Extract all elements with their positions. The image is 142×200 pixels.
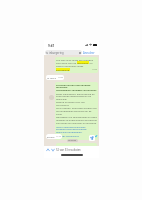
- button[interactable]: Volgende: [51, 148, 55, 152]
- staticText: Reset inburgeren? Emma waard en aanvulle…: [56, 92, 97, 125]
- staticText: voor gaan voor de: [56, 61, 77, 64]
- staticText: verlengt-coronavirus: [56, 134, 79, 137]
- staticText: 11:40: [58, 76, 63, 79]
- staticText: 11:15: [56, 135, 61, 138]
- staticText: resultaten: [77, 61, 89, 64]
- staticText: inburgering: [56, 68, 70, 71]
- button[interactable]: Verstuur: [89, 135, 95, 141]
- staticText: 9:41: [48, 44, 55, 48]
- button[interactable]: Ik check: [46, 75, 64, 80]
- staticText: Wat leuk ik ga maak aan vrienden: [56, 58, 94, 61]
- staticText: Ik check: [47, 76, 56, 79]
- staticText: 11:32: [92, 68, 97, 71]
- staticText: https://inburger.nl/actueel/ artikelen/2…: [56, 125, 88, 134]
- staticText: Annuleer: [83, 51, 95, 55]
- staticText: logisch informatie streek: [56, 64, 84, 67]
- button[interactable]: Schrijven waren overvallende financiele …: [55, 82, 98, 140]
- staticText: inburgering: [49, 51, 64, 55]
- staticText: 52 van 53 resultaten: [56, 148, 81, 152]
- button[interactable]: Vorige: [46, 148, 50, 152]
- button[interactable]: Annuleer: [83, 51, 95, 55]
- staticText: en: [89, 61, 93, 64]
- staticText: Emma: [47, 135, 55, 138]
- button[interactable]: Emma: [46, 134, 62, 139]
- staticText: vandaag: [68, 139, 77, 142]
- button[interactable]: inburgering: [45, 50, 82, 55]
- staticText: Schrijven waren overvallende financiele …: [56, 83, 97, 92]
- staticText: 12:05: [89, 134, 94, 137]
- button[interactable]: Wat leuk ik ga maak aan vrienden: [55, 57, 98, 73]
